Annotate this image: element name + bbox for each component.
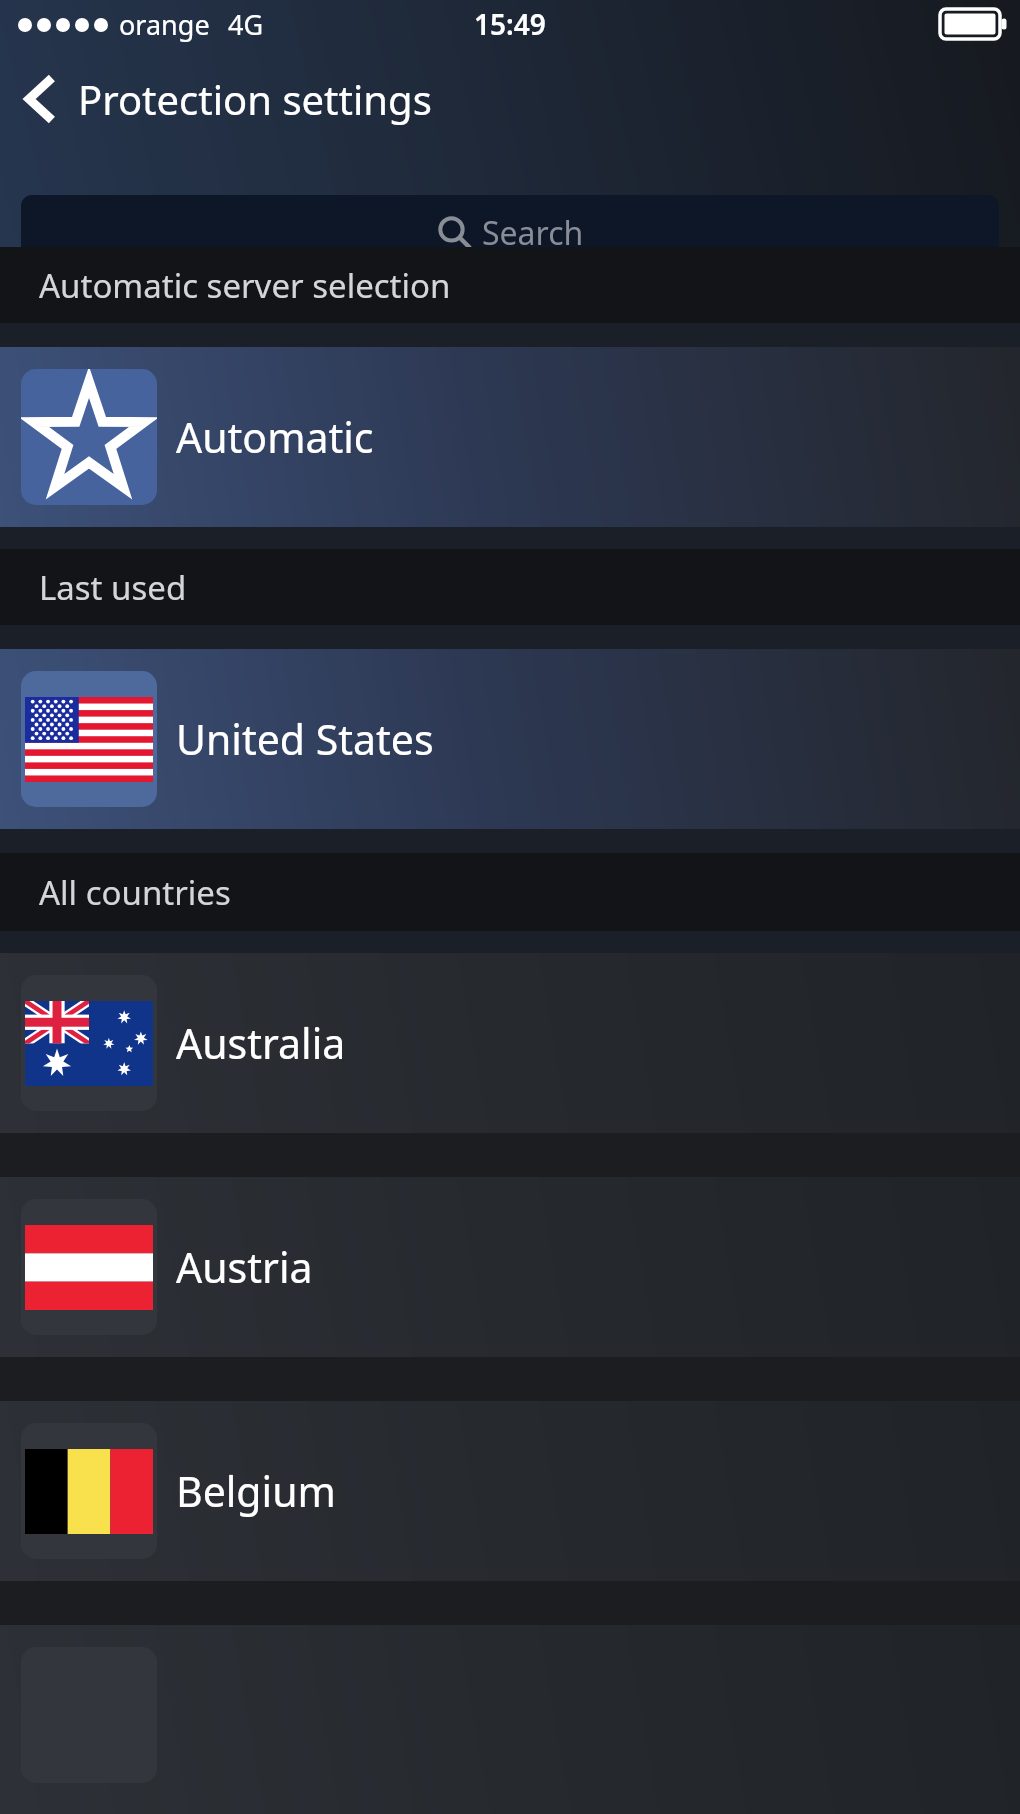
staticText: Belgium [176,1463,336,1519]
button[interactable]: Automatic [0,347,1020,527]
other: Back [24,74,58,124]
staticText: 15:49 [474,5,546,43]
staticText: United States [176,711,434,767]
button[interactable]: Australia [0,953,1020,1133]
staticText: Protection settings [78,72,432,126]
staticText: Automatic [176,409,374,465]
button[interactable]: Back [0,64,1020,134]
staticText: Last used [39,565,187,610]
button[interactable]: United States [0,649,1020,829]
staticText: Automatic server selection [39,263,451,308]
staticText: All countries [39,870,231,915]
staticText: Austria [176,1239,313,1295]
staticText: Australia [176,1015,346,1071]
staticText: orange [119,6,210,43]
staticText: Search [482,211,584,255]
button[interactable]: Search [21,195,999,270]
staticText: 4G [228,6,264,43]
button[interactable]: Belgium [0,1401,1020,1581]
button[interactable]: Austria [0,1177,1020,1357]
